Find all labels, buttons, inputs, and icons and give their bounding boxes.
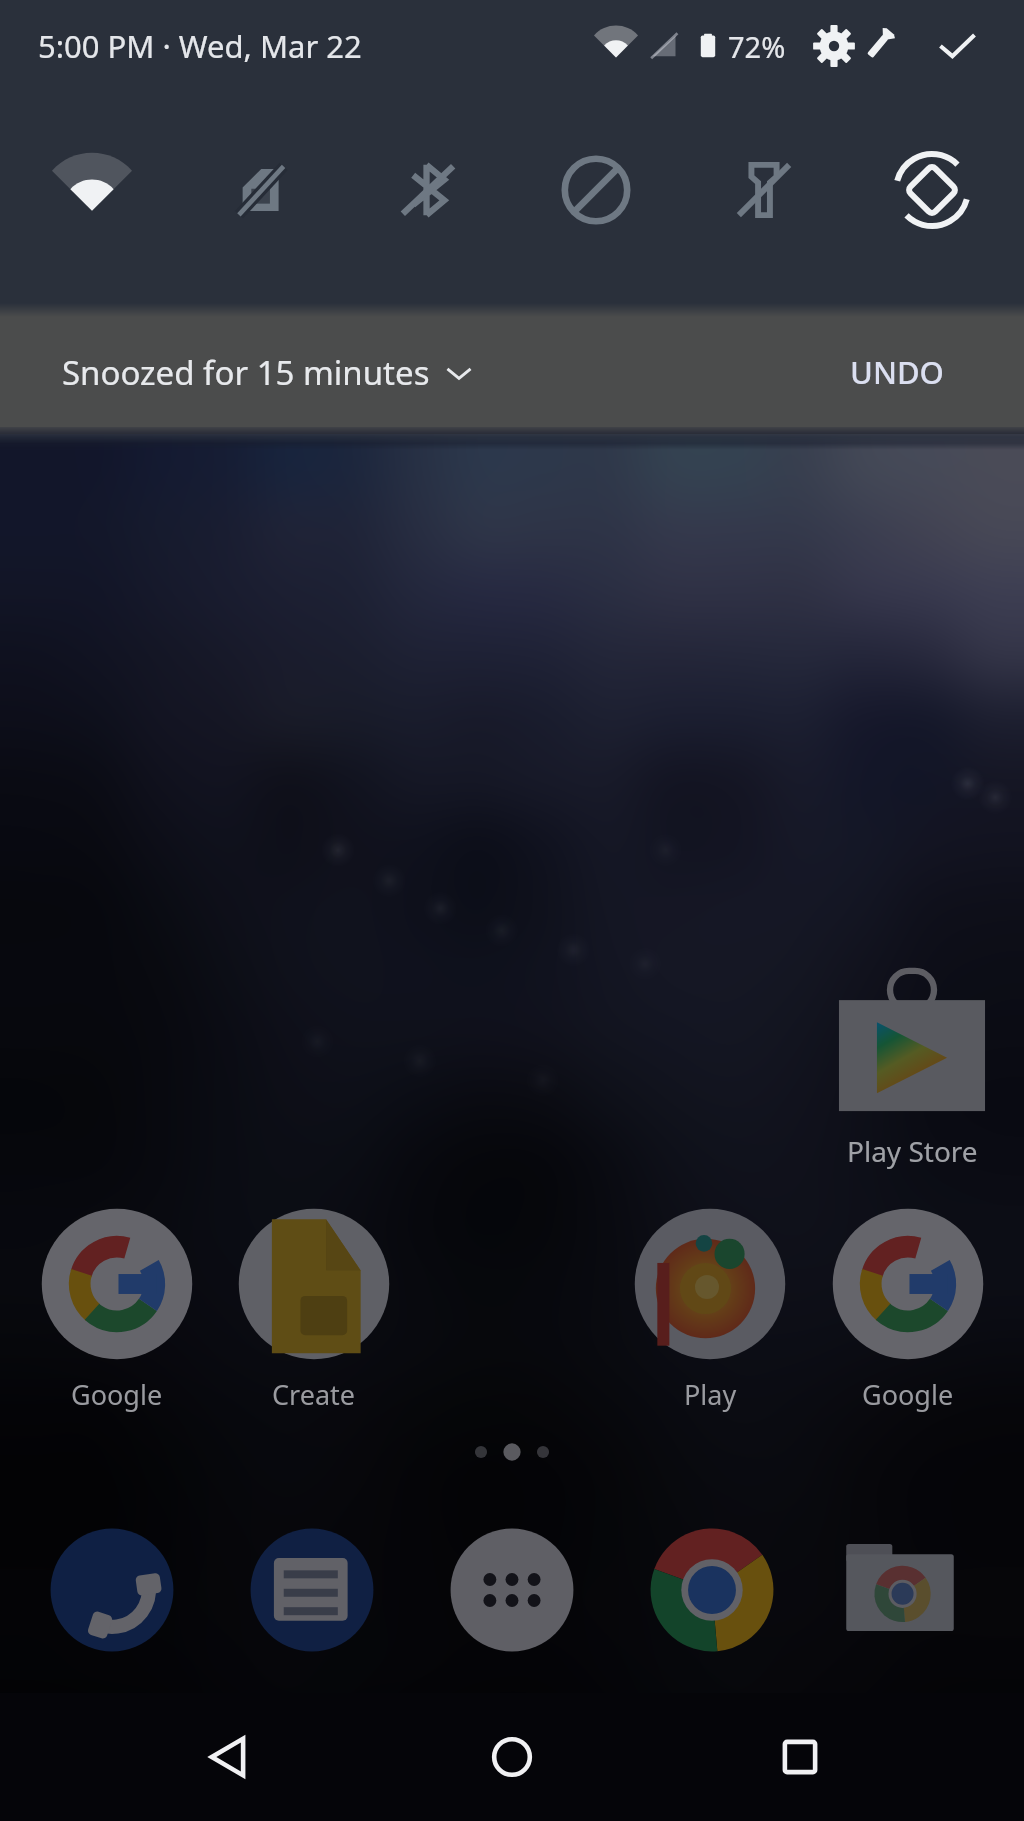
button[interactable]: UNDO	[840, 341, 954, 403]
button[interactable]: Messages	[248, 1526, 376, 1654]
button[interactable]: Phone	[48, 1526, 176, 1654]
staticText: Google	[71, 1376, 163, 1413]
button[interactable]: Home	[454, 1693, 570, 1821]
button[interactable]: Snoozed for 15 minutes	[56, 340, 482, 405]
button[interactable]: Play	[634, 1208, 786, 1408]
button[interactable]: Apps	[448, 1526, 576, 1654]
button[interactable]: Bluetooth off	[372, 120, 484, 260]
staticText: 5:00 PM · Wed, Mar 22	[38, 25, 362, 67]
staticText: 72%	[728, 27, 786, 66]
button[interactable]: Flashlight off	[708, 120, 820, 260]
button[interactable]: Create	[238, 1208, 390, 1408]
button[interactable]: Wi-Fi	[36, 120, 148, 260]
button[interactable]: Recents	[742, 1693, 858, 1821]
button[interactable]: Photos	[836, 1526, 964, 1654]
button[interactable]: Play Store	[824, 968, 1000, 1188]
staticText: Create	[272, 1376, 356, 1413]
button[interactable]: Do not disturb	[540, 120, 652, 260]
button[interactable]: Google	[832, 1208, 984, 1408]
staticText: Play Store	[847, 1132, 978, 1170]
button[interactable]: Chrome	[648, 1526, 776, 1654]
staticText: UNDO	[850, 351, 944, 393]
button[interactable]: Back	[170, 1693, 286, 1821]
button[interactable]: Auto rotate	[876, 120, 988, 260]
staticText: Google	[862, 1376, 954, 1413]
button[interactable]: Mobile data off	[204, 120, 316, 260]
staticText: Snoozed for 15 minutes	[62, 350, 430, 395]
button[interactable]: Google	[41, 1208, 193, 1408]
staticText: Play	[684, 1376, 737, 1413]
